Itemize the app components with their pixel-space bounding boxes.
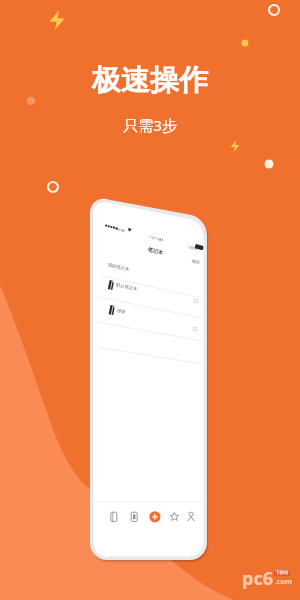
staticText: pc6 [242,566,273,591]
staticText: 1:21 AM [148,234,164,243]
staticText: 极速操作 [92,62,208,99]
staticText: 下载站 [275,570,289,576]
staticText: 只需3步 [123,115,177,135]
staticText: 我的笔记本 [107,262,130,273]
staticText: 笔记本 [147,246,164,257]
staticText: 编辑 [191,258,200,265]
staticText: .com [275,577,292,587]
staticText: 默认笔记本 [115,282,138,293]
staticText: Airtel [115,226,126,233]
staticText: 理财 [116,308,126,316]
staticText: 100% [187,244,198,251]
